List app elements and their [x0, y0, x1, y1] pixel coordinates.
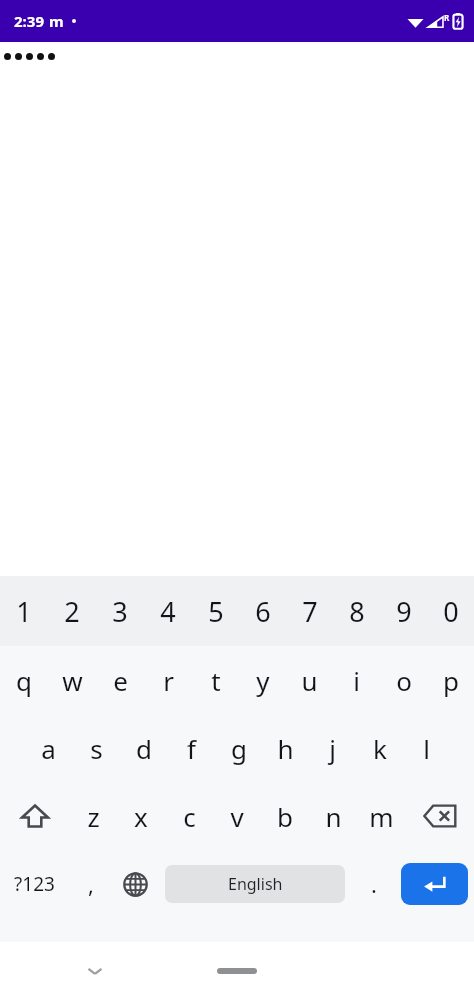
- staticText: 5: [208, 593, 224, 630]
- staticText: 2: [64, 593, 80, 630]
- staticText: t: [211, 663, 221, 698]
- staticText: 3: [112, 593, 128, 630]
- button[interactable]: h: [262, 714, 309, 782]
- button[interactable]: English: [165, 865, 345, 903]
- button[interactable]: ?123: [0, 850, 69, 918]
- button[interactable]: 2: [48, 576, 96, 646]
- staticText: a: [41, 731, 56, 766]
- staticText: u: [301, 663, 318, 698]
- button[interactable]: 7: [286, 576, 333, 646]
- staticText: .: [371, 869, 377, 899]
- staticText: d: [136, 731, 152, 766]
- staticText: h: [277, 731, 294, 766]
- staticText: c: [183, 799, 196, 834]
- button[interactable]: l: [403, 714, 450, 782]
- staticText: 1: [16, 593, 32, 630]
- button[interactable]: k: [356, 714, 403, 782]
- button[interactable]: m: [357, 782, 405, 850]
- staticText: k: [373, 731, 387, 766]
- button[interactable]: g: [215, 714, 262, 782]
- button[interactable]: ,: [69, 850, 112, 918]
- staticText: English: [228, 873, 283, 895]
- staticText: 7: [302, 593, 318, 630]
- staticText: 0: [443, 593, 459, 630]
- button[interactable]: w: [48, 646, 96, 714]
- button[interactable]: .: [352, 850, 395, 918]
- button[interactable]: f: [168, 714, 215, 782]
- button[interactable]: j: [309, 714, 356, 782]
- button[interactable]: 3: [96, 576, 144, 646]
- button[interactable]: 6: [239, 576, 286, 646]
- staticText: m: [49, 11, 64, 31]
- staticText: p: [443, 663, 459, 698]
- staticText: 6: [255, 593, 271, 630]
- staticText: j: [329, 731, 336, 766]
- button[interactable]: 0: [427, 576, 474, 646]
- staticText: 8: [349, 593, 365, 630]
- button[interactable]: a: [24, 714, 72, 782]
- button[interactable]: d: [120, 714, 168, 782]
- staticText: s: [90, 731, 103, 766]
- staticText: z: [87, 799, 100, 834]
- staticText: r: [163, 663, 174, 698]
- button[interactable]: Enter: [401, 863, 468, 905]
- staticText: w: [62, 663, 83, 698]
- button[interactable]: r: [144, 646, 192, 714]
- staticText: x: [134, 799, 148, 834]
- staticText: R: [444, 12, 450, 23]
- staticText: o: [396, 663, 412, 698]
- button[interactable]: i: [333, 646, 380, 714]
- staticText: ,: [88, 869, 94, 899]
- staticText: v: [230, 799, 244, 834]
- button[interactable]: o: [380, 646, 427, 714]
- staticText: n: [325, 799, 342, 834]
- button[interactable]: 9: [380, 576, 427, 646]
- staticText: y: [256, 663, 270, 698]
- staticText: i: [353, 663, 360, 698]
- button[interactable]: 4: [144, 576, 192, 646]
- button[interactable]: p: [427, 646, 474, 714]
- button[interactable]: c: [165, 782, 213, 850]
- staticText: 4: [160, 593, 176, 630]
- button[interactable]: 5: [192, 576, 239, 646]
- staticText: 9: [396, 593, 412, 630]
- button[interactable]: Backspace: [405, 782, 474, 850]
- button[interactable]: Shift: [0, 782, 69, 850]
- staticText: g: [231, 731, 247, 766]
- button[interactable]: Change language: [112, 850, 158, 918]
- button[interactable]: y: [239, 646, 286, 714]
- staticText: l: [423, 731, 430, 766]
- button[interactable]: b: [261, 782, 309, 850]
- button[interactable]: t: [192, 646, 239, 714]
- staticText: 2:39: [14, 11, 44, 31]
- button[interactable]: z: [69, 782, 117, 850]
- button[interactable]: 1: [0, 576, 48, 646]
- staticText: b: [277, 799, 293, 834]
- button[interactable]: 8: [333, 576, 380, 646]
- staticText: q: [16, 663, 32, 698]
- button[interactable]: Hide keyboard: [78, 954, 112, 988]
- button[interactable]: n: [309, 782, 357, 850]
- staticText: m: [369, 799, 394, 834]
- button[interactable]: x: [117, 782, 165, 850]
- staticText: e: [113, 663, 128, 698]
- button[interactable]: v: [213, 782, 261, 850]
- button[interactable]: s: [72, 714, 120, 782]
- staticText: ?123: [14, 871, 55, 897]
- staticText: f: [187, 731, 196, 766]
- button[interactable]: u: [286, 646, 333, 714]
- button[interactable]: q: [0, 646, 48, 714]
- button[interactable]: e: [96, 646, 144, 714]
